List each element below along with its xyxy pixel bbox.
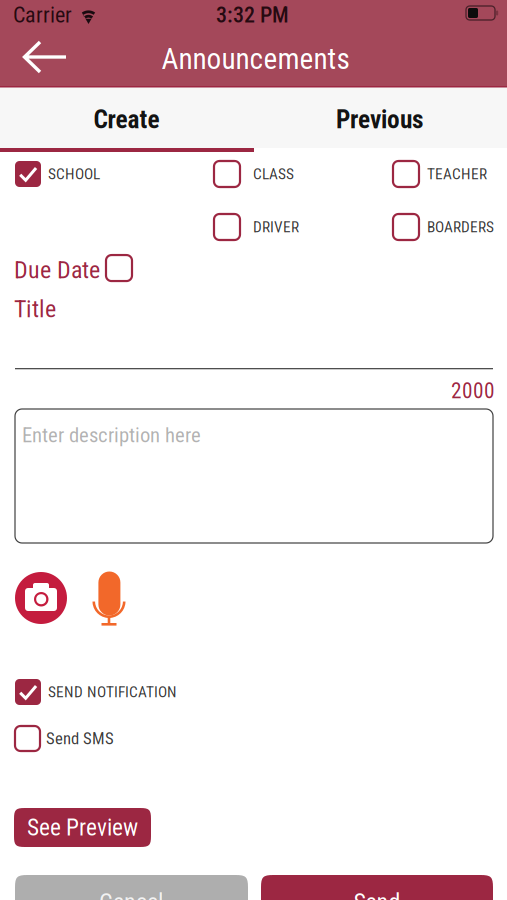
staticText: SEND NOTIFICATION <box>48 683 177 701</box>
button[interactable]: CLASS <box>214 161 294 187</box>
button[interactable]: BOARDERS <box>393 214 494 240</box>
button[interactable]: Back <box>11 29 79 85</box>
staticText: SCHOOL <box>48 165 100 183</box>
button[interactable]: DRIVER <box>214 214 299 240</box>
button[interactable]: Previous <box>253 88 507 151</box>
button[interactable]: See Preview <box>14 808 151 847</box>
button[interactable]: Cancel <box>15 875 248 900</box>
staticText: CLASS <box>253 165 294 183</box>
staticText: Announcements <box>161 42 349 76</box>
button[interactable]: Due Date <box>14 256 132 284</box>
staticText: 2000 <box>451 378 495 403</box>
staticText: Due Date <box>14 256 100 284</box>
staticText: 3:32 PM <box>216 2 289 28</box>
button[interactable]: Take photo <box>15 572 67 624</box>
staticText: Enter description here <box>22 423 201 447</box>
staticText: Carrier <box>13 2 72 28</box>
staticText: Send SMS <box>46 729 114 748</box>
staticText: DRIVER <box>253 218 299 236</box>
button[interactable]: Send <box>261 875 493 900</box>
button[interactable]: TEACHER <box>393 161 487 187</box>
staticText: Send <box>353 888 400 900</box>
staticText: Create <box>93 105 159 134</box>
button[interactable]: Record audio <box>88 571 130 629</box>
staticText: BOARDERS <box>427 218 494 236</box>
staticText: Previous <box>336 105 424 134</box>
button[interactable]: SEND NOTIFICATION <box>15 679 177 705</box>
button[interactable]: Create <box>0 88 253 151</box>
staticText: TEACHER <box>427 165 487 183</box>
staticText: Cancel <box>99 888 164 900</box>
staticText: Title <box>14 295 56 323</box>
button[interactable]: SCHOOL <box>15 161 100 187</box>
staticText: See Preview <box>27 814 138 841</box>
button[interactable]: Send SMS <box>15 726 114 751</box>
